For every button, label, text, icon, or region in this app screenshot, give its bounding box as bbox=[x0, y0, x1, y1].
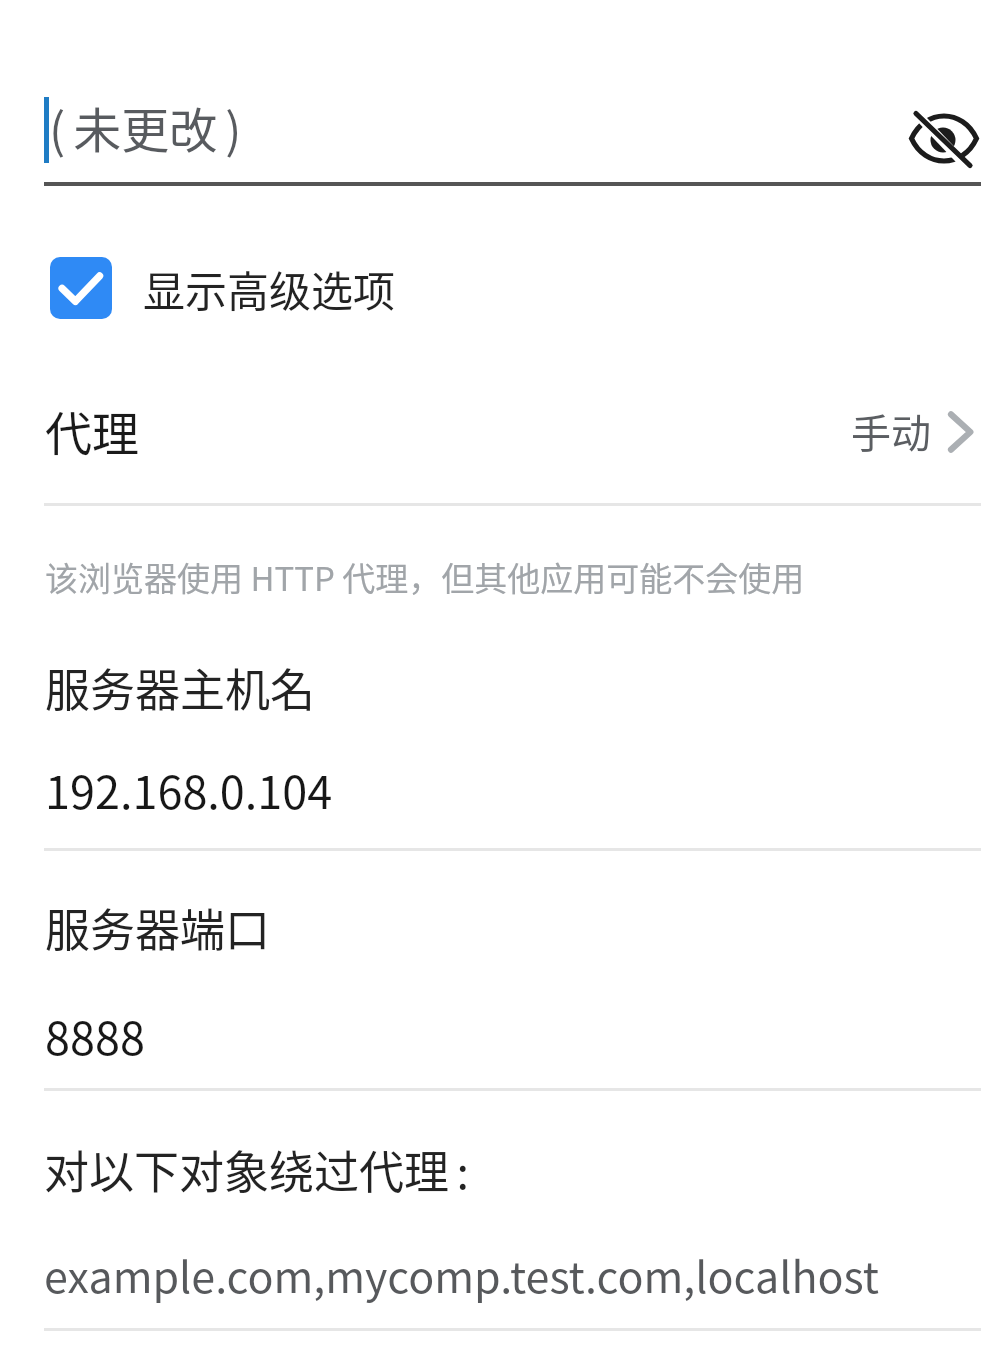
staticText: 服务器端口 bbox=[45, 895, 271, 960]
button[interactable]: ( 未更改 ) bbox=[0, 40, 990, 185]
staticText: 代理 bbox=[45, 396, 139, 464]
button[interactable]: 代理 bbox=[0, 375, 990, 493]
staticText: 手动 bbox=[851, 402, 931, 460]
button[interactable]: 192.168.0.104 bbox=[0, 745, 990, 845]
staticText: 该浏览器使用 HTTP 代理，但其他应用可能不会使用 bbox=[45, 553, 805, 601]
staticText: 服务器主机名 bbox=[45, 655, 316, 720]
staticText: ( 未更改 ) bbox=[49, 92, 242, 162]
button[interactable]: 8888 bbox=[0, 988, 990, 1086]
button[interactable]: 显示高级选项 bbox=[0, 238, 990, 338]
button[interactable]: example.com,mycomp.test.com,localhost bbox=[0, 1228, 990, 1324]
staticText: 显示高级选项 bbox=[143, 258, 396, 319]
staticText: example.com,mycomp.test.com,localhost bbox=[44, 1243, 879, 1305]
staticText: 8888 bbox=[45, 1003, 145, 1068]
button[interactable]: Show password bbox=[895, 100, 981, 186]
staticText: 192.168.0.104 bbox=[45, 757, 333, 822]
staticText: 对以下对象绕过代理 : bbox=[44, 1137, 470, 1202]
